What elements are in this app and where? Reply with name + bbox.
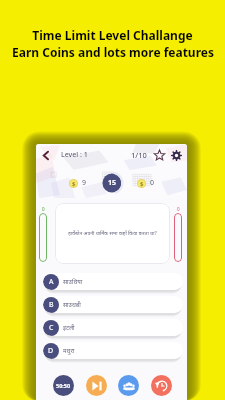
- button[interactable]: 50:50: [53, 375, 74, 396]
- staticText: Time Limit Level Challange: [32, 27, 193, 43]
- button[interactable]: Back: [38, 148, 53, 163]
- staticText: B: [49, 300, 54, 310]
- staticText: साउथबी: [63, 301, 81, 309]
- staticText: इटली: [63, 324, 75, 332]
- button[interactable]: B: [43, 296, 183, 313]
- staticText: A: [49, 277, 54, 287]
- staticText: 0: [42, 206, 45, 212]
- button[interactable]: Favorite: [152, 148, 166, 162]
- staticText: Earn Coins and lots more features: [12, 44, 214, 60]
- button[interactable]: Restore time: [151, 375, 172, 396]
- staticText: 0: [177, 206, 180, 212]
- staticText: C: [49, 323, 54, 333]
- staticText: D: [48, 346, 54, 356]
- button[interactable]: A: [43, 273, 183, 290]
- staticText: Level : 1: [61, 150, 88, 160]
- staticText: $: [72, 180, 76, 188]
- button[interactable]: C: [43, 319, 183, 336]
- button[interactable]: D: [43, 342, 183, 359]
- staticText: मथुरा: [63, 347, 75, 355]
- staticText: हार्वेस्टेन अपनी धार्मिक सभा कहाँ किया क…: [68, 230, 157, 237]
- button[interactable]: Settings: [169, 148, 183, 162]
- staticText: साउथिया: [63, 278, 83, 286]
- staticText: 9: [82, 178, 87, 188]
- staticText: 50:50: [56, 382, 71, 389]
- button[interactable]: Skip question: [86, 375, 107, 396]
- staticText: 1/10: [131, 150, 147, 160]
- staticText: $: [140, 180, 144, 188]
- staticText: 15: [108, 178, 117, 188]
- staticText: 0: [150, 178, 155, 188]
- button[interactable]: Ask the audience: [118, 375, 139, 396]
